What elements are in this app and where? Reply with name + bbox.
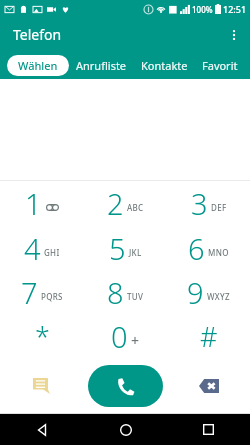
button[interactable]: 2 [84,181,167,226]
staticText: Wählen [18,58,58,73]
button[interactable]: Wählen [7,55,69,76]
button[interactable]: More options [218,19,250,51]
staticText: Telefon [13,25,62,44]
staticText: PQRS [41,291,63,302]
button[interactable]: Recent apps [167,414,250,445]
staticText: Favoriten [202,58,243,73]
staticText: 6 [188,229,205,268]
staticText: * [35,318,50,355]
button[interactable]: Anrufliste [69,54,134,77]
button[interactable]: Home [84,414,167,445]
button[interactable]: Delete [167,358,250,413]
staticText: 4 [24,229,41,268]
staticText: ABC [127,202,144,213]
staticText: JKL [129,247,142,258]
staticText: 1 [25,184,42,223]
staticText: 5 [109,229,126,268]
staticText: 12:51 [223,3,247,15]
button[interactable]: 6 [167,226,250,270]
staticText: Kontakte [141,58,188,73]
staticText: 2 [107,184,124,223]
staticText: TUV [127,291,144,302]
staticText: Anrufliste [76,58,127,73]
staticText: WXYZ [207,291,230,302]
staticText: 3 [191,184,208,223]
button[interactable]: 5 [84,226,167,270]
button[interactable]: * [0,314,84,358]
button[interactable]: 8 [84,270,167,314]
button[interactable]: Call [88,365,163,407]
button[interactable]: 0 [84,314,167,358]
button[interactable]: Favoriten [195,54,250,77]
staticText: # [200,318,218,355]
staticText: DEF [211,202,227,213]
staticText: 100% [192,4,213,15]
button[interactable]: 9 [167,270,250,314]
staticText: GHI [44,247,60,258]
button[interactable]: 1 [0,181,84,226]
button[interactable]: Kontakte [134,54,195,77]
button[interactable]: Send message [0,358,83,413]
button[interactable]: 3 [167,181,250,226]
staticText: 9 [187,273,204,312]
staticText: MNO [208,247,229,258]
staticText: 8 [107,273,124,312]
button[interactable]: # [167,314,250,358]
staticText: + [131,331,140,350]
button[interactable]: 7 [0,270,84,314]
staticText: 0 [111,317,128,356]
button[interactable]: Back [0,414,84,445]
staticText: 7 [21,273,38,312]
button[interactable]: 4 [0,226,84,270]
